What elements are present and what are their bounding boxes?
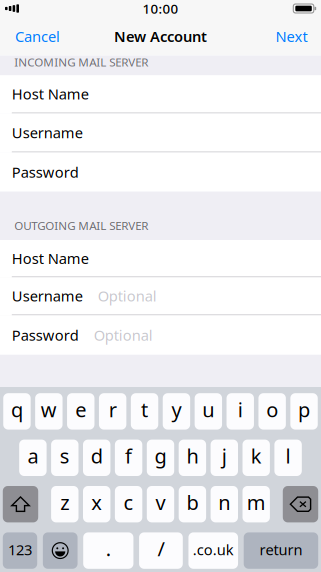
staticText: k xyxy=(251,442,262,469)
button[interactable]: c xyxy=(115,486,142,522)
staticText: Username xyxy=(12,286,83,306)
button[interactable]: i xyxy=(227,393,254,430)
staticText: h xyxy=(186,442,198,469)
button[interactable]: Next xyxy=(263,17,321,56)
button[interactable]: Password xyxy=(0,152,321,191)
staticText: v xyxy=(155,489,165,516)
staticText: Cancel xyxy=(15,27,60,46)
button[interactable]: k xyxy=(242,440,270,476)
staticText: Host Name xyxy=(12,84,89,104)
button[interactable]: Password xyxy=(0,315,321,355)
button[interactable]: x xyxy=(83,486,110,522)
staticText: OUTGOING MAIL SERVER xyxy=(14,218,148,233)
button[interactable]: v xyxy=(147,486,174,522)
button[interactable]: q xyxy=(3,393,31,430)
staticText: .co.uk xyxy=(193,540,234,560)
staticText: z xyxy=(60,489,69,516)
button[interactable]: s xyxy=(51,440,78,476)
button[interactable]: o xyxy=(258,393,286,430)
staticText: b xyxy=(186,489,198,516)
button[interactable]: / xyxy=(139,532,183,569)
button[interactable]: Host Name xyxy=(0,75,321,113)
staticText: New Account xyxy=(114,27,207,46)
button[interactable]: f xyxy=(115,440,142,476)
staticText: x xyxy=(91,489,102,516)
button[interactable]: l xyxy=(274,440,302,476)
button[interactable]: w xyxy=(35,393,62,430)
staticText: u xyxy=(202,396,214,423)
staticText: l xyxy=(286,442,291,469)
staticText: Host Name xyxy=(12,248,89,268)
button[interactable]: b xyxy=(179,486,206,522)
button[interactable]: Shift xyxy=(3,486,38,522)
staticText: a xyxy=(27,442,38,469)
button[interactable]: Delete xyxy=(283,486,318,522)
staticText: Username xyxy=(12,123,83,142)
staticText: 10:00 xyxy=(142,0,178,17)
button[interactable]: u xyxy=(195,393,222,430)
button[interactable]: . xyxy=(83,532,133,569)
button[interactable]: t xyxy=(131,393,158,430)
button[interactable]: h xyxy=(179,440,206,476)
staticText: d xyxy=(91,442,103,469)
staticText: e xyxy=(75,396,86,423)
staticText: p xyxy=(298,396,310,423)
staticText: . xyxy=(106,535,111,562)
button[interactable]: a xyxy=(19,440,47,476)
button[interactable]: Emoji xyxy=(43,532,78,569)
button[interactable]: Cancel xyxy=(0,17,72,56)
staticText: q xyxy=(11,396,23,423)
staticText: i xyxy=(238,396,243,423)
button[interactable]: r xyxy=(99,393,126,430)
button[interactable]: j xyxy=(211,440,238,476)
staticText: Password xyxy=(12,325,79,345)
staticText: w xyxy=(41,396,57,423)
staticText: j xyxy=(222,442,227,469)
staticText: y xyxy=(171,396,181,423)
button[interactable]: .co.uk xyxy=(188,532,238,569)
button[interactable]: 123 xyxy=(3,532,37,569)
button[interactable]: Username xyxy=(0,113,321,152)
staticText: t xyxy=(141,396,148,423)
button[interactable]: d xyxy=(83,440,110,476)
staticText: r xyxy=(109,396,117,423)
button[interactable]: g xyxy=(147,440,174,476)
staticText: m xyxy=(247,489,266,516)
staticText: Password xyxy=(12,162,79,182)
staticText: f xyxy=(125,442,132,469)
staticText: return xyxy=(259,540,302,560)
button[interactable]: y xyxy=(163,393,190,430)
staticText: n xyxy=(218,489,230,516)
button[interactable]: Host Name xyxy=(0,240,321,277)
staticText: INCOMING MAIL SERVER xyxy=(14,54,148,70)
button[interactable]: return xyxy=(244,532,318,569)
staticText: Optional xyxy=(94,325,153,345)
button[interactable]: n xyxy=(211,486,238,522)
staticText: c xyxy=(124,489,134,516)
button[interactable]: z xyxy=(51,486,78,522)
staticText: / xyxy=(157,535,164,562)
staticText: g xyxy=(154,442,166,469)
staticText: Next xyxy=(275,27,307,46)
button[interactable]: e xyxy=(67,393,94,430)
staticText: Optional xyxy=(98,286,157,306)
button[interactable]: p xyxy=(290,393,318,430)
button[interactable]: Username xyxy=(0,277,321,315)
staticText: o xyxy=(266,396,278,423)
staticText: s xyxy=(60,442,70,469)
staticText: 123 xyxy=(8,540,32,560)
button[interactable]: m xyxy=(242,486,270,522)
